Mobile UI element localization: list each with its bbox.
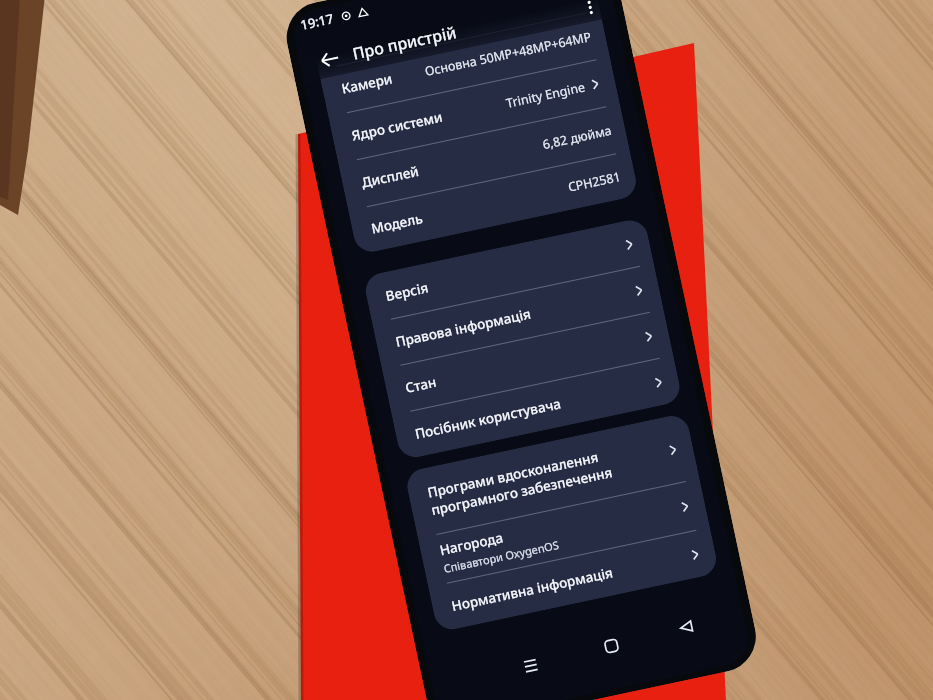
button[interactable]: Back <box>673 614 699 640</box>
staticText: 19:17 <box>299 9 336 34</box>
staticText: Дисплей <box>360 162 421 192</box>
staticText: CPH2581 <box>566 168 623 196</box>
staticText: Програми вдосконалення <box>426 448 601 502</box>
button[interactable]: Програми вдосконалення <box>422 415 686 534</box>
button[interactable]: More options <box>576 0 604 22</box>
staticText: програмного забезпечення <box>429 463 614 519</box>
staticText: Нормативна інформація <box>450 563 615 615</box>
staticText: Правова інформація <box>394 305 532 351</box>
button[interactable]: Пам'ять <box>327 0 586 65</box>
staticText: Камери <box>340 69 394 98</box>
button[interactable]: Home <box>598 633 624 659</box>
staticText: Trinity Engine <box>505 78 587 112</box>
button[interactable]: Версія <box>381 220 640 319</box>
button[interactable]: Дисплей <box>357 106 616 206</box>
staticText: 6,82 дюйма <box>541 122 613 153</box>
button[interactable]: Посібник користувача <box>410 358 669 457</box>
staticText: Посібник користувача <box>413 394 563 443</box>
staticText: Модель <box>370 209 424 237</box>
button[interactable]: Нормативна інформація <box>447 530 706 629</box>
staticText: Співавтори OxygenOS <box>442 537 561 576</box>
staticText: Стан <box>403 373 438 397</box>
staticText: Основна 50MP+48MP+64MP <box>423 28 593 80</box>
button[interactable]: Модель <box>367 153 626 251</box>
button[interactable]: Стан <box>400 312 660 411</box>
button[interactable]: Правова інформація <box>391 266 650 365</box>
staticText: Про пристрій <box>350 21 459 65</box>
button[interactable]: Recents <box>518 652 544 678</box>
button[interactable]: Нагорода <box>436 481 696 583</box>
staticText: Пам'ять <box>330 22 386 51</box>
staticText: Нагорода <box>438 528 505 559</box>
staticText: Версія <box>384 278 431 305</box>
staticText: Ядро системи <box>350 108 445 145</box>
button[interactable]: Ядро системи <box>347 59 606 159</box>
button[interactable]: Камери <box>337 12 596 112</box>
button[interactable]: Back <box>315 45 343 73</box>
